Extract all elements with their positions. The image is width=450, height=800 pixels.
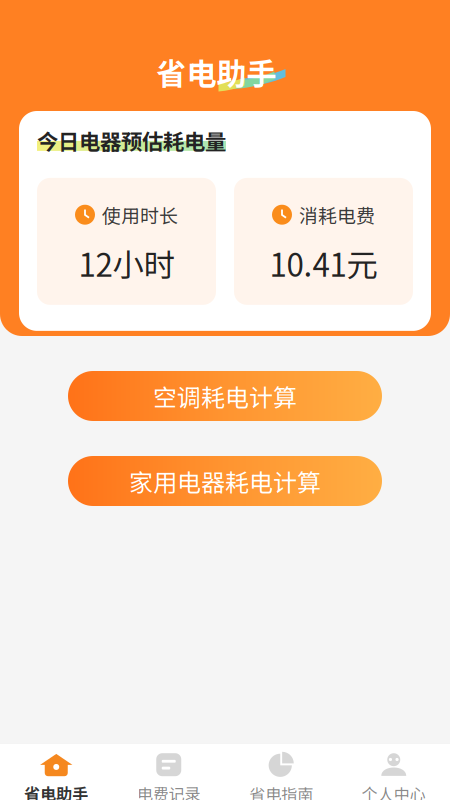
staticText: 使用时长: [102, 201, 178, 228]
button[interactable]: 空调耗电计算: [68, 371, 382, 421]
staticText: 个人中心: [362, 782, 426, 800]
button[interactable]: 个人中心: [337, 744, 450, 800]
button[interactable]: 电费记录: [112, 744, 225, 800]
staticText: 12小时: [78, 240, 174, 286]
staticText: 消耗电费: [299, 201, 375, 228]
button[interactable]: 家用电器耗电计算: [68, 456, 382, 506]
staticText: 省电助手: [156, 50, 276, 93]
button[interactable]: 省电指南: [225, 744, 337, 800]
button[interactable]: 省电助手: [0, 744, 112, 800]
staticText: 今日电器预估耗电量: [37, 125, 226, 156]
staticText: 空调耗电计算: [153, 379, 297, 413]
staticText: 省电助手: [24, 782, 88, 800]
staticText: 电费记录: [137, 782, 201, 800]
staticText: 省电指南: [249, 782, 313, 800]
staticText: 家用电器耗电计算: [129, 464, 321, 498]
staticText: 10.41元: [269, 240, 377, 286]
